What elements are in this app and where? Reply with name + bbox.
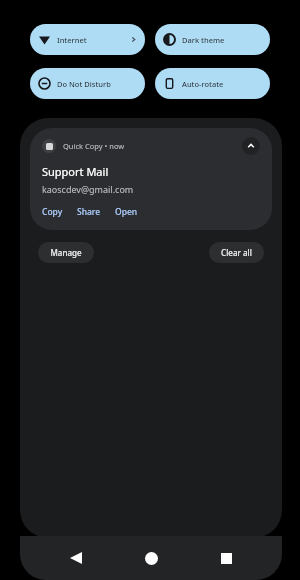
- button[interactable]: Share: [77, 206, 101, 218]
- button[interactable]: Dark theme: [155, 24, 270, 55]
- staticText: Dark theme: [182, 35, 225, 45]
- button[interactable]: Do Not Disturb: [30, 68, 145, 99]
- staticText: Manage: [50, 247, 82, 258]
- staticText: Share: [77, 206, 101, 218]
- button[interactable]: Collapse: [242, 137, 260, 155]
- staticText: Support Mail: [42, 164, 109, 179]
- staticText: Internet: [57, 35, 87, 45]
- staticText: Copy: [42, 206, 63, 218]
- staticText: Auto-rotate: [182, 79, 224, 89]
- button[interactable]: Auto-rotate: [155, 68, 270, 99]
- button[interactable]: Home: [135, 542, 167, 574]
- button[interactable]: Quick Copy • now: [30, 128, 272, 230]
- staticText: kaoscdev@gmail.com: [42, 183, 134, 195]
- button[interactable]: Open: [115, 206, 138, 218]
- staticText: Do Not Disturb: [57, 79, 111, 89]
- staticText: Clear all: [221, 247, 252, 258]
- staticText: Open: [115, 206, 138, 218]
- button[interactable]: Copy: [42, 206, 63, 218]
- button[interactable]: Recents: [210, 542, 242, 574]
- button[interactable]: Clear all: [209, 242, 264, 263]
- button[interactable]: Manage: [38, 242, 94, 263]
- button[interactable]: Back: [60, 542, 92, 574]
- staticText: Quick Copy • now: [63, 141, 125, 151]
- button[interactable]: Internet: [30, 24, 145, 55]
